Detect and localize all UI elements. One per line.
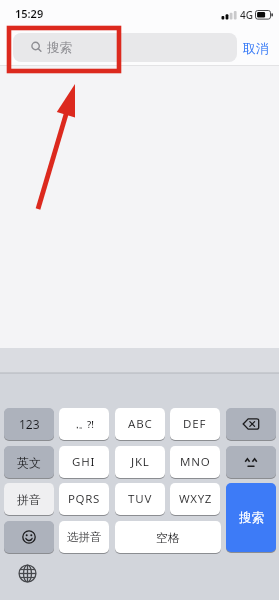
staticText: 英文 — [17, 455, 41, 470]
button[interactable]: 空格 — [115, 521, 221, 553]
staticText: 取消 — [243, 40, 269, 56]
staticText: WXYZ — [179, 491, 212, 507]
button[interactable]: GHI — [59, 446, 109, 478]
staticText: 123 — [19, 416, 40, 432]
staticText: ?! — [87, 418, 94, 431]
button[interactable] — [13, 559, 41, 587]
staticText: 空格 — [156, 530, 180, 545]
button[interactable]: TUV — [115, 483, 165, 515]
button[interactable]: DEF — [170, 408, 220, 440]
staticText: 4G — [240, 8, 253, 22]
button[interactable]: PQRS — [59, 483, 109, 515]
button[interactable]: WXYZ — [170, 483, 220, 515]
staticText: GHI — [72, 454, 96, 470]
staticText: TUV — [128, 491, 153, 507]
button[interactable]: 搜索 — [13, 33, 237, 62]
button[interactable]: 英文 — [4, 446, 54, 478]
staticText: 搜索 — [47, 40, 72, 56]
staticText: 15:29 — [15, 6, 44, 21]
staticText: PQRS — [68, 491, 100, 507]
staticText: ABC — [128, 416, 153, 432]
button[interactable]: 选拼音 — [59, 521, 109, 553]
button[interactable] — [4, 521, 54, 553]
staticText: 选拼音 — [67, 530, 102, 544]
button[interactable]: JKL — [115, 446, 165, 478]
staticText: DEF — [183, 416, 207, 432]
button[interactable]: ，。 — [59, 408, 109, 440]
staticText: ，。 — [74, 418, 87, 431]
button[interactable]: 拼音 — [4, 483, 54, 515]
staticText: MNO — [180, 454, 211, 470]
staticText: 搜索 — [239, 510, 264, 526]
staticText: JKL — [131, 454, 150, 470]
button[interactable]: ABC — [115, 408, 165, 440]
staticText: 拼音 — [17, 492, 41, 507]
button[interactable] — [226, 446, 276, 478]
button[interactable]: 123 — [4, 408, 54, 440]
button[interactable]: 取消 — [243, 33, 275, 62]
button[interactable] — [226, 408, 276, 440]
button[interactable]: MNO — [170, 446, 220, 478]
button[interactable]: 搜索 — [226, 483, 276, 552]
